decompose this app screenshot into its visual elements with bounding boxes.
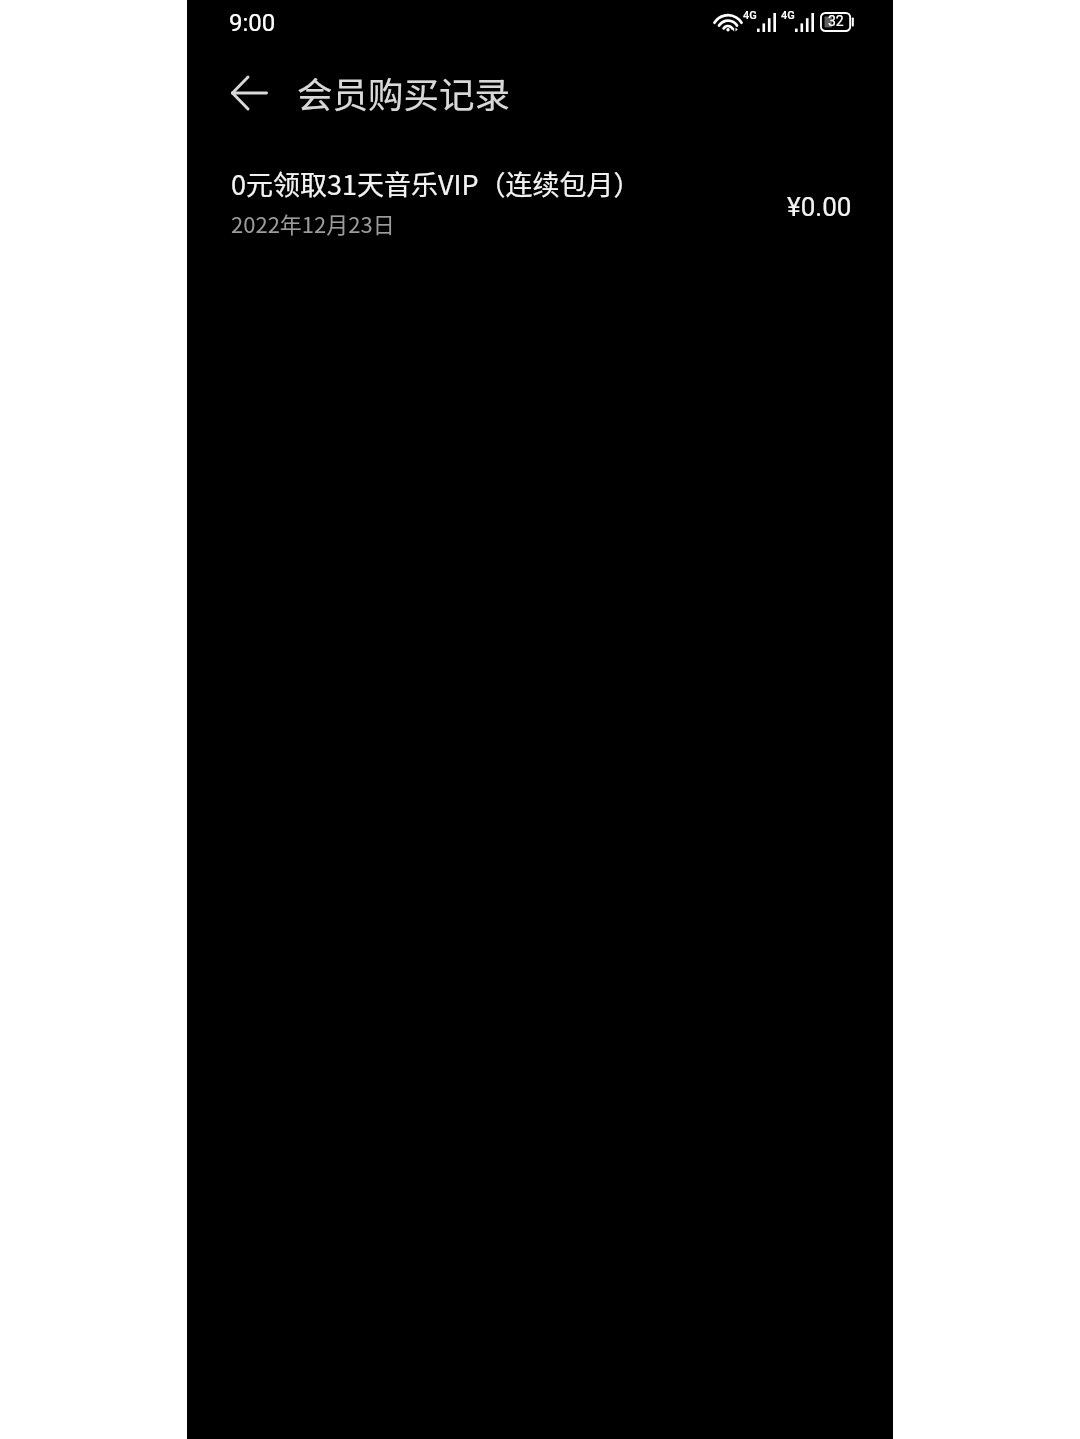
staticText: 32 [828, 13, 844, 29]
staticText: 9:00 [229, 9, 276, 37]
button[interactable]: 0元领取31天音乐VIP（连续包月） [187, 148, 893, 252]
staticText: 会员购买记录 [297, 67, 511, 118]
staticText: 4G [781, 9, 795, 22]
button[interactable]: Back [222, 66, 276, 120]
staticText: 4G [743, 9, 757, 22]
staticText: ¥0.00 [787, 192, 852, 222]
staticText: 2022年12月23日 [231, 207, 395, 239]
staticText: 0元领取31天音乐VIP（连续包月） [231, 164, 641, 203]
